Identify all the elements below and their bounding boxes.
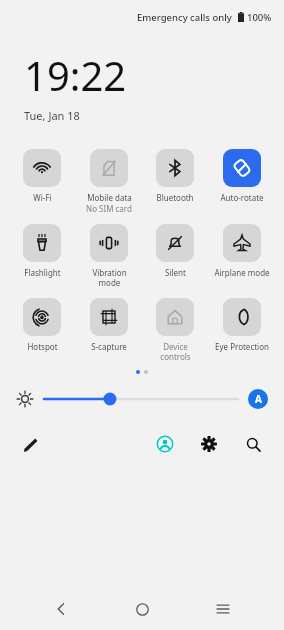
staticText: Silent — [165, 267, 186, 278]
button[interactable]: Edit — [18, 432, 42, 456]
staticText: Mobile data — [87, 192, 132, 203]
button[interactable]: Auto-rotate — [209, 149, 275, 203]
staticText: A — [255, 392, 262, 406]
staticText: Hotspot — [27, 341, 58, 352]
button[interactable]: Recents — [203, 589, 243, 629]
staticText: Airplane mode — [214, 267, 270, 278]
button[interactable]: Device controls — [142, 298, 208, 362]
button[interactable]: User — [152, 431, 178, 457]
button[interactable]: Back — [41, 589, 81, 629]
staticText: Bluetooth — [156, 192, 194, 203]
button[interactable]: Home — [122, 589, 162, 629]
staticText: Wi-Fi — [33, 192, 52, 203]
button[interactable] — [44, 387, 238, 411]
staticText: Flashlight — [24, 267, 61, 278]
button[interactable]: Wi-Fi — [9, 149, 75, 203]
staticText: S-capture — [91, 341, 127, 352]
staticText: Tue, Jan 18 — [24, 108, 80, 123]
staticText: Eye Protection — [215, 341, 269, 352]
staticText: Device controls — [160, 341, 191, 362]
button[interactable]: Auto brightness — [248, 389, 268, 409]
button[interactable]: Settings — [196, 431, 222, 457]
button[interactable]: Search — [240, 431, 266, 457]
staticText: No SIM card — [86, 203, 132, 214]
staticText: Auto-rotate — [220, 192, 264, 203]
button[interactable]: Vibration mode — [76, 224, 142, 288]
button[interactable]: Mobile data — [76, 149, 142, 214]
button[interactable]: Silent — [142, 224, 208, 278]
button[interactable]: Bluetooth — [142, 149, 208, 203]
button[interactable]: Airplane mode — [209, 224, 275, 278]
button[interactable]: Hotspot — [9, 298, 75, 352]
staticText: Vibration mode — [92, 267, 127, 288]
button[interactable]: Eye Protection — [209, 298, 275, 352]
staticText: Emergency calls only — [137, 11, 232, 24]
staticText: 100% — [247, 11, 272, 24]
button[interactable]: Flashlight — [9, 224, 75, 278]
staticText: 19:22 — [24, 48, 127, 102]
button[interactable]: S-capture — [76, 298, 142, 352]
